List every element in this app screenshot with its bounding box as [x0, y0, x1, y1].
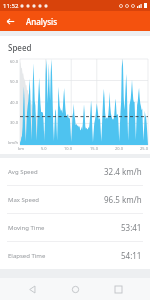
staticText: Speed	[8, 42, 32, 53]
button[interactable]: Home	[64, 278, 86, 300]
button[interactable]: Back	[21, 278, 43, 300]
staticText: 60.0	[0, 59, 18, 64]
button[interactable]: Elapsed Time	[0, 242, 150, 269]
staticText: 32.4 km/h	[104, 166, 142, 177]
staticText: Max Speed	[8, 196, 39, 204]
staticText: 10.0	[64, 146, 72, 151]
staticText: Avg Speed	[8, 168, 38, 176]
button[interactable]: Back	[0, 11, 20, 31]
staticText: km	[18, 146, 24, 151]
staticText: Elapsed Time	[8, 252, 46, 260]
staticText: 50.0	[0, 79, 18, 84]
staticText: 40.0	[0, 100, 18, 105]
staticText: 11:52	[3, 2, 19, 10]
staticText: 54:11	[121, 250, 142, 261]
button[interactable]: Moving Time	[0, 214, 150, 241]
staticText: 25.0	[140, 146, 148, 151]
button[interactable]: Max Speed	[0, 186, 150, 213]
staticText: Analysis	[26, 16, 58, 27]
staticText: Moving Time	[8, 224, 45, 232]
staticText: km/h	[0, 140, 18, 145]
staticText: 15.0	[90, 146, 98, 151]
button[interactable]: Avg Speed	[0, 158, 150, 185]
button[interactable]: Recent apps	[107, 278, 129, 300]
staticText: 53:41	[121, 222, 142, 233]
staticText: 20.0	[115, 146, 123, 151]
staticText: 30.0	[0, 120, 18, 125]
staticText: 5.0	[41, 146, 47, 151]
staticText: 96.5 km/h	[104, 194, 142, 205]
